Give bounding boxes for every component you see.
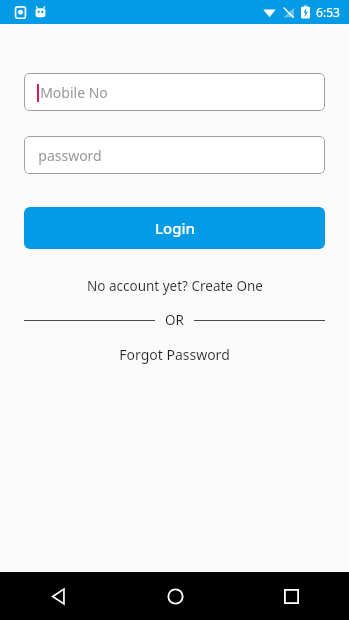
button[interactable]: Mobile No bbox=[24, 73, 325, 111]
staticText: No account yet? Create One bbox=[87, 277, 263, 295]
staticText: password bbox=[38, 146, 102, 165]
button[interactable]: Back bbox=[0, 572, 117, 620]
button[interactable]: password bbox=[24, 136, 325, 174]
button[interactable]: Recent apps bbox=[233, 572, 349, 620]
staticText: 6:53 bbox=[316, 4, 340, 20]
staticText: OR bbox=[165, 311, 184, 329]
button[interactable]: Forgot Password bbox=[0, 345, 349, 364]
button[interactable]: Login bbox=[24, 207, 325, 249]
staticText: Login bbox=[155, 218, 195, 238]
staticText: Mobile No bbox=[40, 83, 108, 102]
button[interactable]: No account yet? Create One bbox=[0, 277, 349, 295]
button[interactable]: Home bbox=[117, 572, 233, 620]
staticText: Forgot Password bbox=[119, 345, 230, 364]
